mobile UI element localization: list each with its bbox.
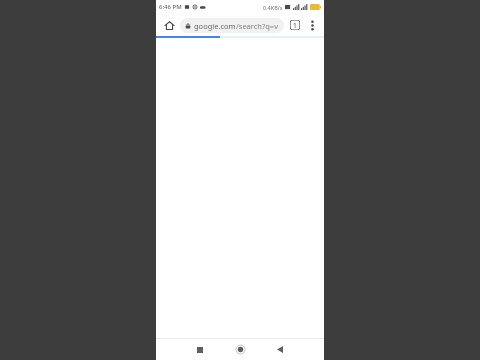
staticText: 6:46 PM — [159, 3, 182, 11]
button[interactable]: Home — [225, 339, 255, 360]
button[interactable]: Back — [265, 339, 295, 360]
staticText: google.com — [194, 21, 236, 31]
button[interactable]: google.com — [180, 18, 284, 33]
staticText: 0.4KB/s — [263, 4, 283, 11]
staticText: 1 — [293, 21, 297, 30]
button[interactable]: Tabs — [287, 17, 303, 33]
button[interactable]: Home — [160, 16, 178, 34]
staticText: /search?q=v — [236, 21, 278, 31]
button[interactable]: Recent apps — [185, 339, 215, 360]
button[interactable]: More options — [304, 17, 320, 33]
